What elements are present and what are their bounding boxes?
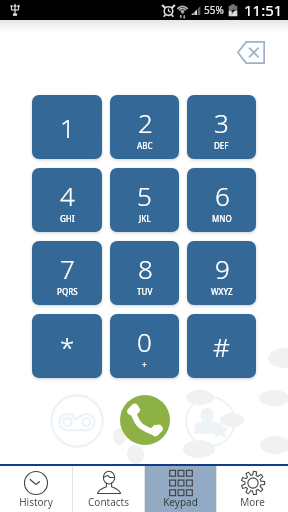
- staticText: 55%: [204, 3, 224, 17]
- button[interactable]: 9: [187, 241, 256, 305]
- button[interactable]: #: [187, 314, 256, 378]
- button[interactable]: 8: [110, 241, 179, 305]
- staticText: +: [142, 359, 147, 370]
- staticText: 9: [215, 251, 230, 286]
- button[interactable]: 3: [187, 95, 256, 159]
- button[interactable]: 1: [32, 95, 102, 159]
- staticText: JKL: [139, 213, 151, 224]
- staticText: *: [60, 329, 75, 364]
- staticText: MNO: [212, 213, 232, 224]
- button[interactable]: More: [217, 466, 288, 512]
- staticText: Keypad: [163, 495, 198, 509]
- staticText: TUV: [137, 286, 153, 297]
- staticText: 6: [215, 178, 230, 213]
- button[interactable]: 4: [32, 168, 102, 232]
- button[interactable]: 7: [32, 241, 102, 305]
- staticText: 5: [137, 178, 152, 213]
- staticText: 0: [137, 324, 152, 359]
- staticText: 7: [60, 251, 75, 286]
- staticText: GHI: [60, 213, 75, 224]
- button[interactable]: Keypad: [145, 466, 216, 512]
- button[interactable]: 5: [110, 168, 179, 232]
- staticText: 8: [138, 251, 153, 286]
- staticText: DEF: [214, 140, 229, 151]
- button[interactable]: Call: [120, 395, 170, 445]
- button[interactable]: Voicemail: [50, 394, 104, 448]
- staticText: 2: [138, 105, 153, 140]
- button[interactable]: History: [0, 466, 72, 512]
- staticText: 3: [214, 105, 229, 140]
- staticText: #: [213, 329, 230, 364]
- button[interactable]: Add contact: [185, 396, 236, 447]
- staticText: 4: [60, 178, 75, 213]
- staticText: History: [19, 495, 53, 509]
- staticText: 11:51: [244, 0, 283, 20]
- button[interactable]: Contacts: [73, 466, 144, 512]
- staticText: Contacts: [88, 495, 129, 509]
- staticText: ABC: [137, 140, 153, 151]
- staticText: WXYZ: [211, 286, 233, 297]
- button[interactable]: 6: [187, 168, 256, 232]
- button[interactable]: 0: [110, 314, 179, 378]
- button[interactable]: 2: [110, 95, 179, 159]
- button[interactable]: Backspace: [237, 41, 265, 64]
- staticText: More: [240, 495, 265, 509]
- staticText: PQRS: [57, 286, 78, 297]
- button[interactable]: *: [32, 314, 102, 378]
- staticText: 1: [60, 110, 75, 145]
